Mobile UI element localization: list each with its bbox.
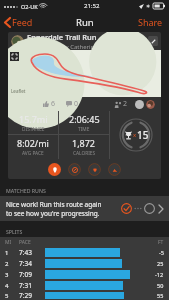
staticText: 2:06:45 xyxy=(69,113,100,125)
staticText: O2-UK xyxy=(21,3,38,10)
staticText: MI xyxy=(5,239,12,246)
staticText: 5 xyxy=(5,292,9,300)
button[interactable]: 2 xyxy=(112,99,130,109)
button[interactable]: 15.7mi xyxy=(8,111,58,134)
staticText: 8:02/mi xyxy=(17,137,49,149)
staticText: -5 xyxy=(159,249,164,256)
staticText: 7:09 xyxy=(19,270,32,279)
button[interactable]: Heart rate xyxy=(88,163,101,176)
button[interactable]: Share xyxy=(132,13,169,31)
staticText: 25 xyxy=(157,260,164,267)
staticText: to see how you're progressing. xyxy=(6,209,100,218)
staticText: 21:52 xyxy=(84,2,100,10)
button[interactable]: 6 xyxy=(41,99,58,109)
staticText: Share xyxy=(138,16,163,28)
button[interactable]: x xyxy=(110,111,161,159)
staticText: x xyxy=(133,131,137,139)
button[interactable]: Nice work! Run this route again xyxy=(0,196,169,221)
staticText: 7:31 xyxy=(19,281,32,290)
staticText: MATCHED RUNS xyxy=(6,187,46,194)
staticText: 15 xyxy=(137,128,149,142)
button[interactable]: Location xyxy=(48,163,61,176)
button[interactable]: 8:02/mi xyxy=(8,135,58,159)
staticText: Ennerdale Trail Run xyxy=(27,32,97,42)
staticText: AVG PACE xyxy=(22,150,44,157)
staticText: FT xyxy=(158,239,164,246)
staticText: Run xyxy=(76,16,94,29)
staticText: 0 xyxy=(74,99,79,109)
staticText: Feed xyxy=(12,16,33,28)
staticText: 55 xyxy=(157,292,164,299)
staticText: 7:43 xyxy=(19,248,32,257)
staticText: 7:29 xyxy=(19,291,32,300)
staticText: 4 xyxy=(5,282,9,290)
staticText: 2 xyxy=(5,260,9,268)
staticText: Nice work! Run this route again xyxy=(6,200,102,209)
staticText: ✶ xyxy=(146,3,151,9)
staticText: 15.7mi xyxy=(19,113,48,125)
button[interactable]: 5 xyxy=(0,291,169,300)
button[interactable]: 2 xyxy=(0,258,169,269)
button[interactable]: Participant xyxy=(135,100,144,109)
staticText: 3 xyxy=(5,271,9,279)
button[interactable]: Elevation xyxy=(108,163,121,176)
staticText: TIME xyxy=(78,126,90,133)
button[interactable]: Expand map xyxy=(10,52,19,61)
button[interactable]: Participant xyxy=(146,100,155,109)
button[interactable]: 1 xyxy=(0,247,169,258)
staticText: SPLITS xyxy=(6,228,23,235)
button[interactable]: 2:06:45 xyxy=(59,111,109,134)
button[interactable]: 1,872 xyxy=(59,135,109,159)
button[interactable]: Shoes xyxy=(68,163,81,176)
staticText: 50 xyxy=(157,282,164,289)
staticText: 18 Oct 2015 by Catherine Slater xyxy=(27,43,116,50)
staticText: 1 xyxy=(5,249,9,257)
button[interactable]: Edit xyxy=(148,36,158,46)
staticText: Leaflet xyxy=(11,88,26,94)
staticText: PACE xyxy=(19,239,31,246)
staticText: 2 xyxy=(123,99,128,109)
staticText: -12 xyxy=(155,271,164,278)
button[interactable]: Feed xyxy=(0,13,38,31)
button[interactable]: 4 xyxy=(0,280,169,291)
button[interactable]: 0 xyxy=(64,99,81,109)
staticText: 1,872 xyxy=(72,137,96,149)
staticText: 7:34 xyxy=(19,259,32,268)
staticText: DISTANCE xyxy=(22,126,45,133)
staticText: 6 xyxy=(51,99,56,109)
staticText: CALORIES xyxy=(73,150,96,157)
button[interactable]: 3 xyxy=(0,269,169,280)
